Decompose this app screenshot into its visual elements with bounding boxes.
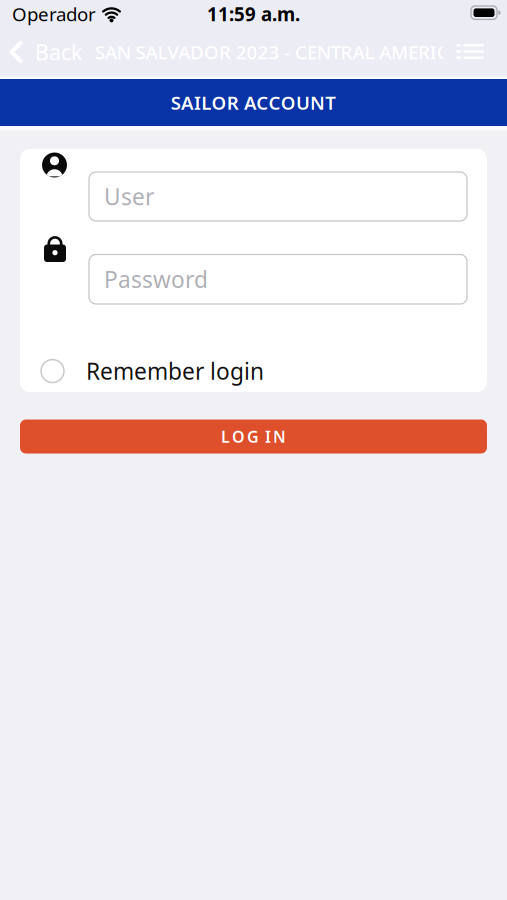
staticText: SAN SALVADOR 2023 - CENTRAL AMERICAN AND (95, 40, 507, 64)
staticText: Remember login (86, 356, 264, 386)
button[interactable]: L O G I N (20, 419, 487, 453)
button[interactable]: Remember login (41, 356, 264, 386)
button[interactable]: User (89, 172, 467, 221)
staticText: SAILOR ACCOUNT (171, 90, 336, 115)
button[interactable]: Back (8, 30, 82, 74)
staticText: 11:59 a.m. (207, 2, 300, 26)
button[interactable]: Menu (455, 30, 485, 74)
staticText: Back (35, 38, 82, 66)
staticText: User (104, 181, 154, 211)
staticText: Operador (12, 2, 96, 26)
staticText: Password (104, 264, 208, 294)
button[interactable]: Password (89, 254, 467, 304)
staticText: L O G I N (221, 426, 286, 447)
